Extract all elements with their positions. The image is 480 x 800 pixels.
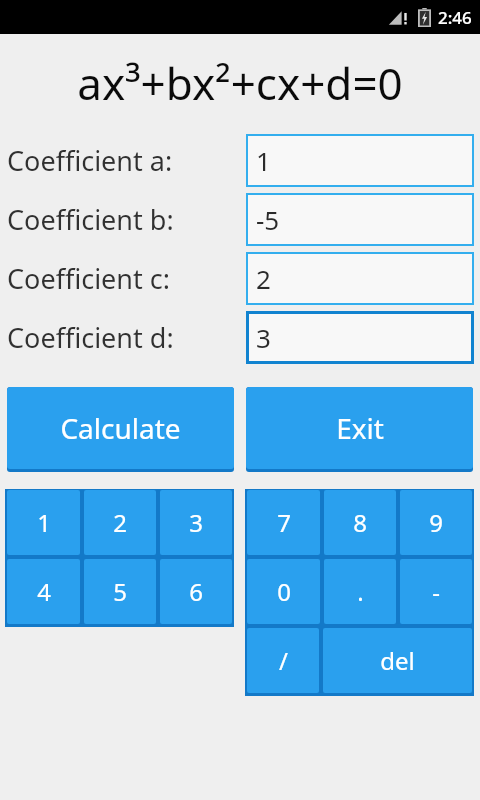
staticText: 1 — [256, 143, 271, 178]
staticText: Calculate — [60, 409, 181, 447]
staticText: 1 — [37, 506, 51, 539]
button[interactable]: 3 — [158, 489, 234, 558]
button[interactable]: del — [321, 627, 474, 696]
staticText: -5 — [256, 202, 280, 237]
button[interactable]: 7 — [245, 489, 322, 558]
staticText: Coefficient d: — [7, 319, 174, 356]
button[interactable]: Exit — [246, 387, 473, 472]
staticText: 5 — [113, 575, 127, 608]
staticText: 2 — [256, 261, 271, 296]
staticText: 8 — [353, 506, 367, 539]
staticText: 3 — [256, 320, 271, 355]
staticText: 4 — [37, 575, 51, 608]
button[interactable]: 9 — [398, 489, 474, 558]
staticText: 2 — [113, 506, 127, 539]
staticText: 9 — [429, 506, 443, 539]
staticText: 3 — [189, 506, 203, 539]
staticText: - — [432, 575, 440, 608]
button[interactable]: 3 — [246, 311, 474, 364]
button[interactable]: 5 — [82, 558, 158, 627]
staticText: / — [279, 644, 288, 677]
button[interactable]: 0 — [245, 558, 322, 627]
button[interactable]: 6 — [158, 558, 234, 627]
staticText: Coefficient a: — [7, 142, 173, 179]
staticText: Coefficient b: — [7, 201, 174, 238]
staticText: Coefficient c: — [7, 260, 170, 297]
staticText: 2:46 — [438, 6, 472, 29]
button[interactable]: 2 — [246, 252, 474, 305]
staticText: Exit — [336, 409, 384, 447]
staticText: del — [380, 644, 415, 677]
button[interactable]: 2 — [82, 489, 158, 558]
button[interactable]: 1 — [5, 489, 82, 558]
button[interactable]: Calculate — [7, 387, 234, 472]
staticText: 6 — [189, 575, 203, 608]
button[interactable]: / — [245, 627, 321, 696]
button[interactable]: . — [322, 558, 398, 627]
staticText: 0 — [277, 575, 291, 608]
button[interactable]: 1 — [246, 134, 474, 187]
staticText: 7 — [277, 506, 291, 539]
button[interactable]: 4 — [5, 558, 82, 627]
staticText: ax³+bx²+cx+d=0 — [77, 53, 403, 113]
button[interactable]: -5 — [246, 193, 474, 246]
button[interactable]: - — [398, 558, 474, 627]
button[interactable]: 8 — [322, 489, 398, 558]
staticText: . — [357, 575, 364, 608]
